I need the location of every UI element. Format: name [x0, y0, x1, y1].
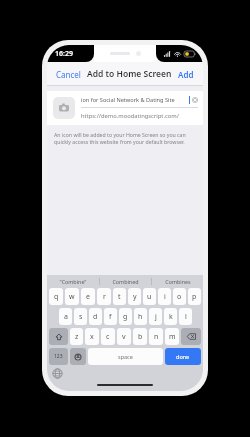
button[interactable]: t — [113, 288, 126, 305]
staticText: z — [75, 332, 79, 342]
button[interactable]: l — [179, 308, 192, 325]
staticText: q — [54, 292, 59, 302]
button[interactable]: e — [81, 288, 95, 305]
staticText: m — [169, 332, 176, 342]
staticText: k — [169, 312, 173, 322]
button[interactable]: Combines — [152, 275, 203, 288]
staticText: s — [79, 312, 83, 322]
staticText: d — [93, 312, 98, 322]
staticText: t — [118, 292, 121, 302]
staticText: ion for Social Network & Dating Site Com… — [81, 96, 189, 104]
button[interactable]: Combined — [100, 275, 151, 288]
staticText: x — [90, 332, 94, 342]
button[interactable]: d — [89, 308, 102, 325]
button[interactable]: 123 — [49, 348, 68, 365]
button[interactable]: Emoji — [70, 348, 86, 365]
button[interactable]: f — [104, 308, 117, 325]
staticText: v — [122, 332, 126, 342]
button[interactable]: r — [97, 288, 111, 305]
staticText: Add to Home Screen — [87, 68, 172, 80]
staticText: Add — [178, 69, 194, 80]
staticText: space — [118, 353, 133, 360]
staticText: f — [109, 312, 112, 322]
staticText: 123 — [54, 353, 63, 360]
button[interactable]: k — [164, 308, 177, 325]
button[interactable]: q — [49, 288, 63, 305]
button[interactable]: w — [65, 288, 79, 305]
button[interactable]: x — [85, 328, 99, 345]
button[interactable]: g — [119, 308, 132, 325]
staticText: h — [138, 312, 143, 322]
button[interactable]: h — [134, 308, 147, 325]
staticText: o — [177, 292, 182, 302]
staticText: g — [123, 312, 128, 322]
button[interactable]: Change keyboard — [52, 368, 63, 379]
staticText: b — [138, 332, 143, 342]
button[interactable]: space — [88, 348, 163, 365]
button[interactable]: n — [149, 328, 163, 345]
staticText: e — [86, 292, 90, 302]
button[interactable]: y — [128, 288, 141, 305]
staticText: c — [106, 332, 110, 342]
staticText: "Combine" — [59, 278, 87, 285]
staticText: u — [147, 292, 152, 302]
button[interactable]: Add — [176, 66, 196, 83]
button[interactable]: u — [143, 288, 156, 305]
staticText: l — [185, 312, 187, 322]
button[interactable]: Clear text — [192, 97, 198, 103]
button[interactable]: o — [173, 288, 186, 305]
staticText: Combined — [112, 278, 139, 285]
button[interactable]: Backspace — [181, 328, 201, 345]
button[interactable]: m — [165, 328, 179, 345]
staticText: a — [64, 312, 68, 322]
staticText: j — [155, 312, 157, 322]
staticText: n — [154, 332, 159, 342]
staticText: Cancel — [56, 69, 81, 80]
staticText: w — [69, 292, 75, 302]
button[interactable]: done — [165, 348, 201, 365]
button[interactable]: j — [149, 308, 162, 325]
staticText: Combines — [165, 278, 191, 285]
staticText: https://demo.moodatingscript.com/ — [81, 112, 179, 120]
button[interactable]: a — [59, 308, 72, 325]
staticText: 16:29 — [55, 49, 73, 59]
staticText: An icon will be added to your Home Scree… — [54, 131, 186, 146]
button[interactable]: i — [158, 288, 171, 305]
button[interactable]: b — [133, 328, 147, 345]
staticText: i — [164, 292, 166, 302]
button[interactable]: Shift — [49, 328, 68, 345]
button[interactable]: Cancel — [54, 66, 83, 83]
button[interactable]: z — [70, 328, 83, 345]
button[interactable]: v — [117, 328, 131, 345]
staticText: y — [133, 292, 137, 302]
staticText: r — [103, 292, 106, 302]
button[interactable]: p — [188, 288, 201, 305]
staticText: p — [192, 292, 197, 302]
button[interactable]: "Combine" — [47, 275, 99, 288]
button[interactable]: c — [101, 328, 115, 345]
button[interactable]: s — [74, 308, 87, 325]
staticText: done — [176, 353, 190, 360]
